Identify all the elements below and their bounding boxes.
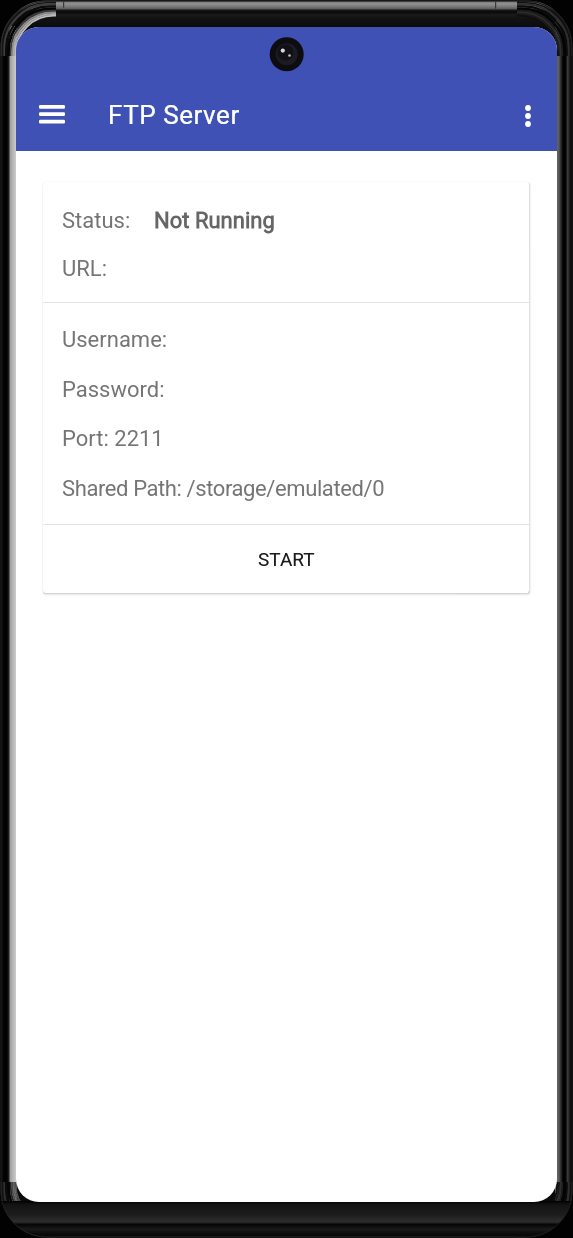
staticText: URL: [62,256,107,282]
staticText: Password: [62,377,165,403]
staticText: START [258,548,315,570]
staticText: Port: 2211 [62,426,164,452]
staticText: Shared Path: /storage/emulated/0 [62,476,385,502]
staticText: FTP Server [108,100,240,130]
staticText: Username: [62,327,168,353]
button[interactable]: Open navigation drawer [34,96,70,132]
button[interactable]: START [43,525,529,593]
button[interactable]: More options [511,99,544,132]
staticText: Status: [62,208,131,234]
staticText: START [258,548,315,570]
staticText: Not Running [154,208,275,234]
